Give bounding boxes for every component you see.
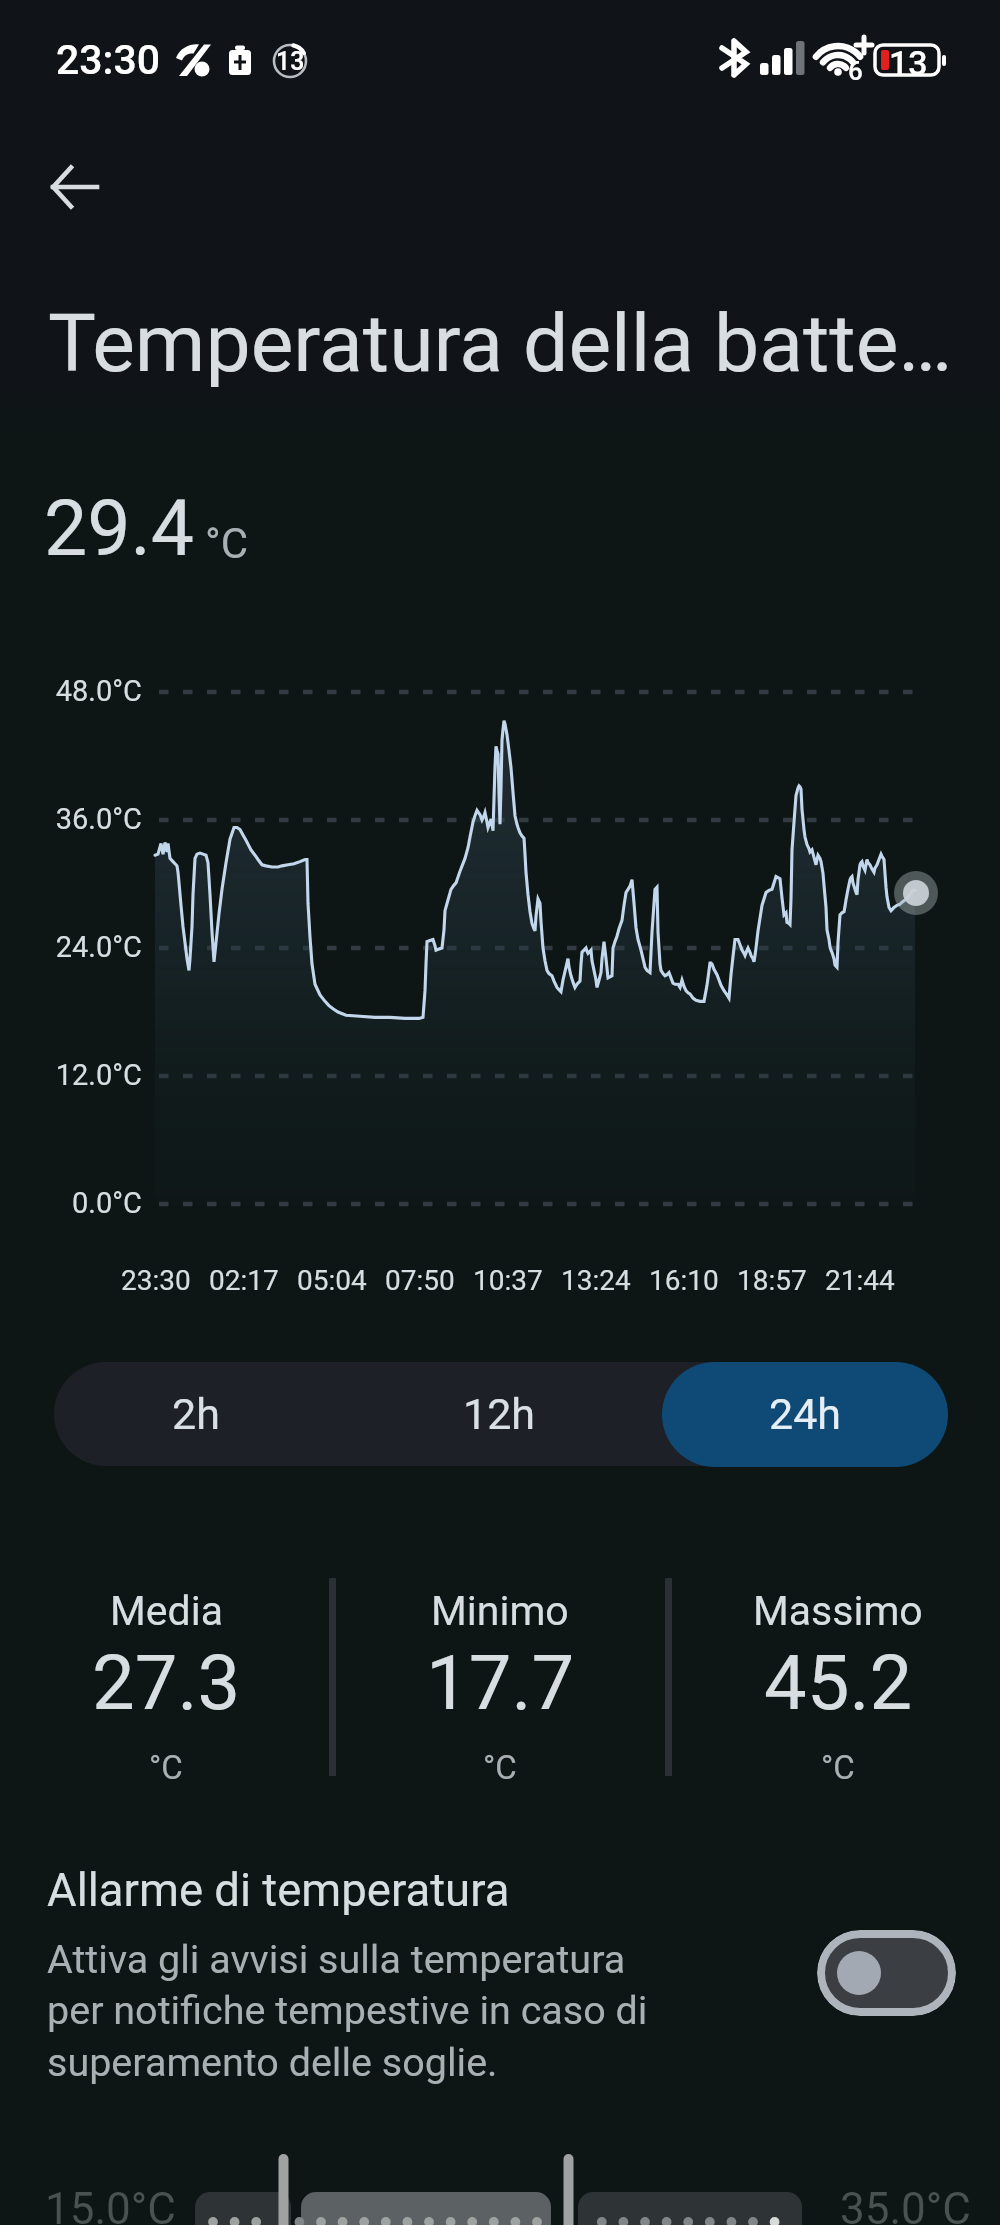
staticText: 13 bbox=[276, 47, 305, 76]
staticText: °C bbox=[821, 1748, 855, 1787]
staticText: Minimo bbox=[431, 1587, 569, 1635]
staticText: Attiva gli avvisi sulla temperatura per … bbox=[47, 1936, 687, 2085]
staticText: 05:04 bbox=[297, 1264, 367, 1297]
staticText: 29.4 bbox=[44, 484, 195, 574]
staticText: Massimo bbox=[753, 1587, 923, 1635]
staticText: 12h bbox=[463, 1389, 536, 1439]
staticText: Allarme di temperatura bbox=[47, 1864, 510, 1917]
staticText: 35.0°C bbox=[840, 2183, 971, 2225]
staticText: 02:17 bbox=[209, 1264, 279, 1297]
staticText: 45.2 bbox=[764, 1638, 913, 1727]
staticText: 07:50 bbox=[385, 1264, 455, 1297]
staticText: 13 bbox=[889, 43, 928, 83]
staticText: 16:10 bbox=[649, 1264, 719, 1297]
staticText: 12.0°C bbox=[55, 1058, 142, 1092]
button[interactable]: Media bbox=[0, 1587, 336, 1787]
staticText: 23:30 bbox=[121, 1264, 191, 1297]
staticText: 10:37 bbox=[473, 1264, 543, 1297]
button[interactable]: Temperature threshold range bbox=[190, 2185, 810, 2225]
staticText: 36.0°C bbox=[55, 802, 142, 836]
staticText: °C bbox=[149, 1748, 183, 1787]
staticText: Media bbox=[110, 1587, 223, 1635]
staticText: 23:30 bbox=[56, 36, 161, 84]
staticText: 24h bbox=[769, 1389, 842, 1439]
staticText: °C bbox=[483, 1748, 517, 1787]
staticText: 0.0°C bbox=[72, 1186, 142, 1220]
staticText: °C bbox=[205, 519, 249, 568]
button[interactable]: Toggle temperature alarm bbox=[817, 1930, 956, 2016]
staticText: 27.3 bbox=[92, 1638, 241, 1727]
button[interactable]: Massimo bbox=[668, 1587, 1000, 1787]
button[interactable]: 24h bbox=[662, 1362, 948, 1466]
staticText: 48.0°C bbox=[55, 674, 142, 708]
staticText: 2h bbox=[172, 1389, 220, 1439]
staticText: 21:44 bbox=[825, 1264, 895, 1297]
staticText: 24.0°C bbox=[55, 930, 142, 964]
staticText: 6 bbox=[848, 56, 863, 86]
staticText: 13:24 bbox=[561, 1264, 631, 1297]
staticText: Temperatura della batte… bbox=[48, 296, 953, 390]
staticText: 15.0°C bbox=[45, 2183, 176, 2225]
button[interactable]: Minimo bbox=[330, 1587, 670, 1787]
staticText: 17.7 bbox=[426, 1638, 575, 1727]
staticText: 18:57 bbox=[737, 1264, 807, 1297]
button[interactable]: Back bbox=[30, 143, 118, 231]
button[interactable]: 2h bbox=[47, 1362, 344, 1466]
button[interactable]: Allarme di temperatura bbox=[47, 1864, 747, 2085]
button[interactable]: 12h bbox=[344, 1362, 655, 1466]
